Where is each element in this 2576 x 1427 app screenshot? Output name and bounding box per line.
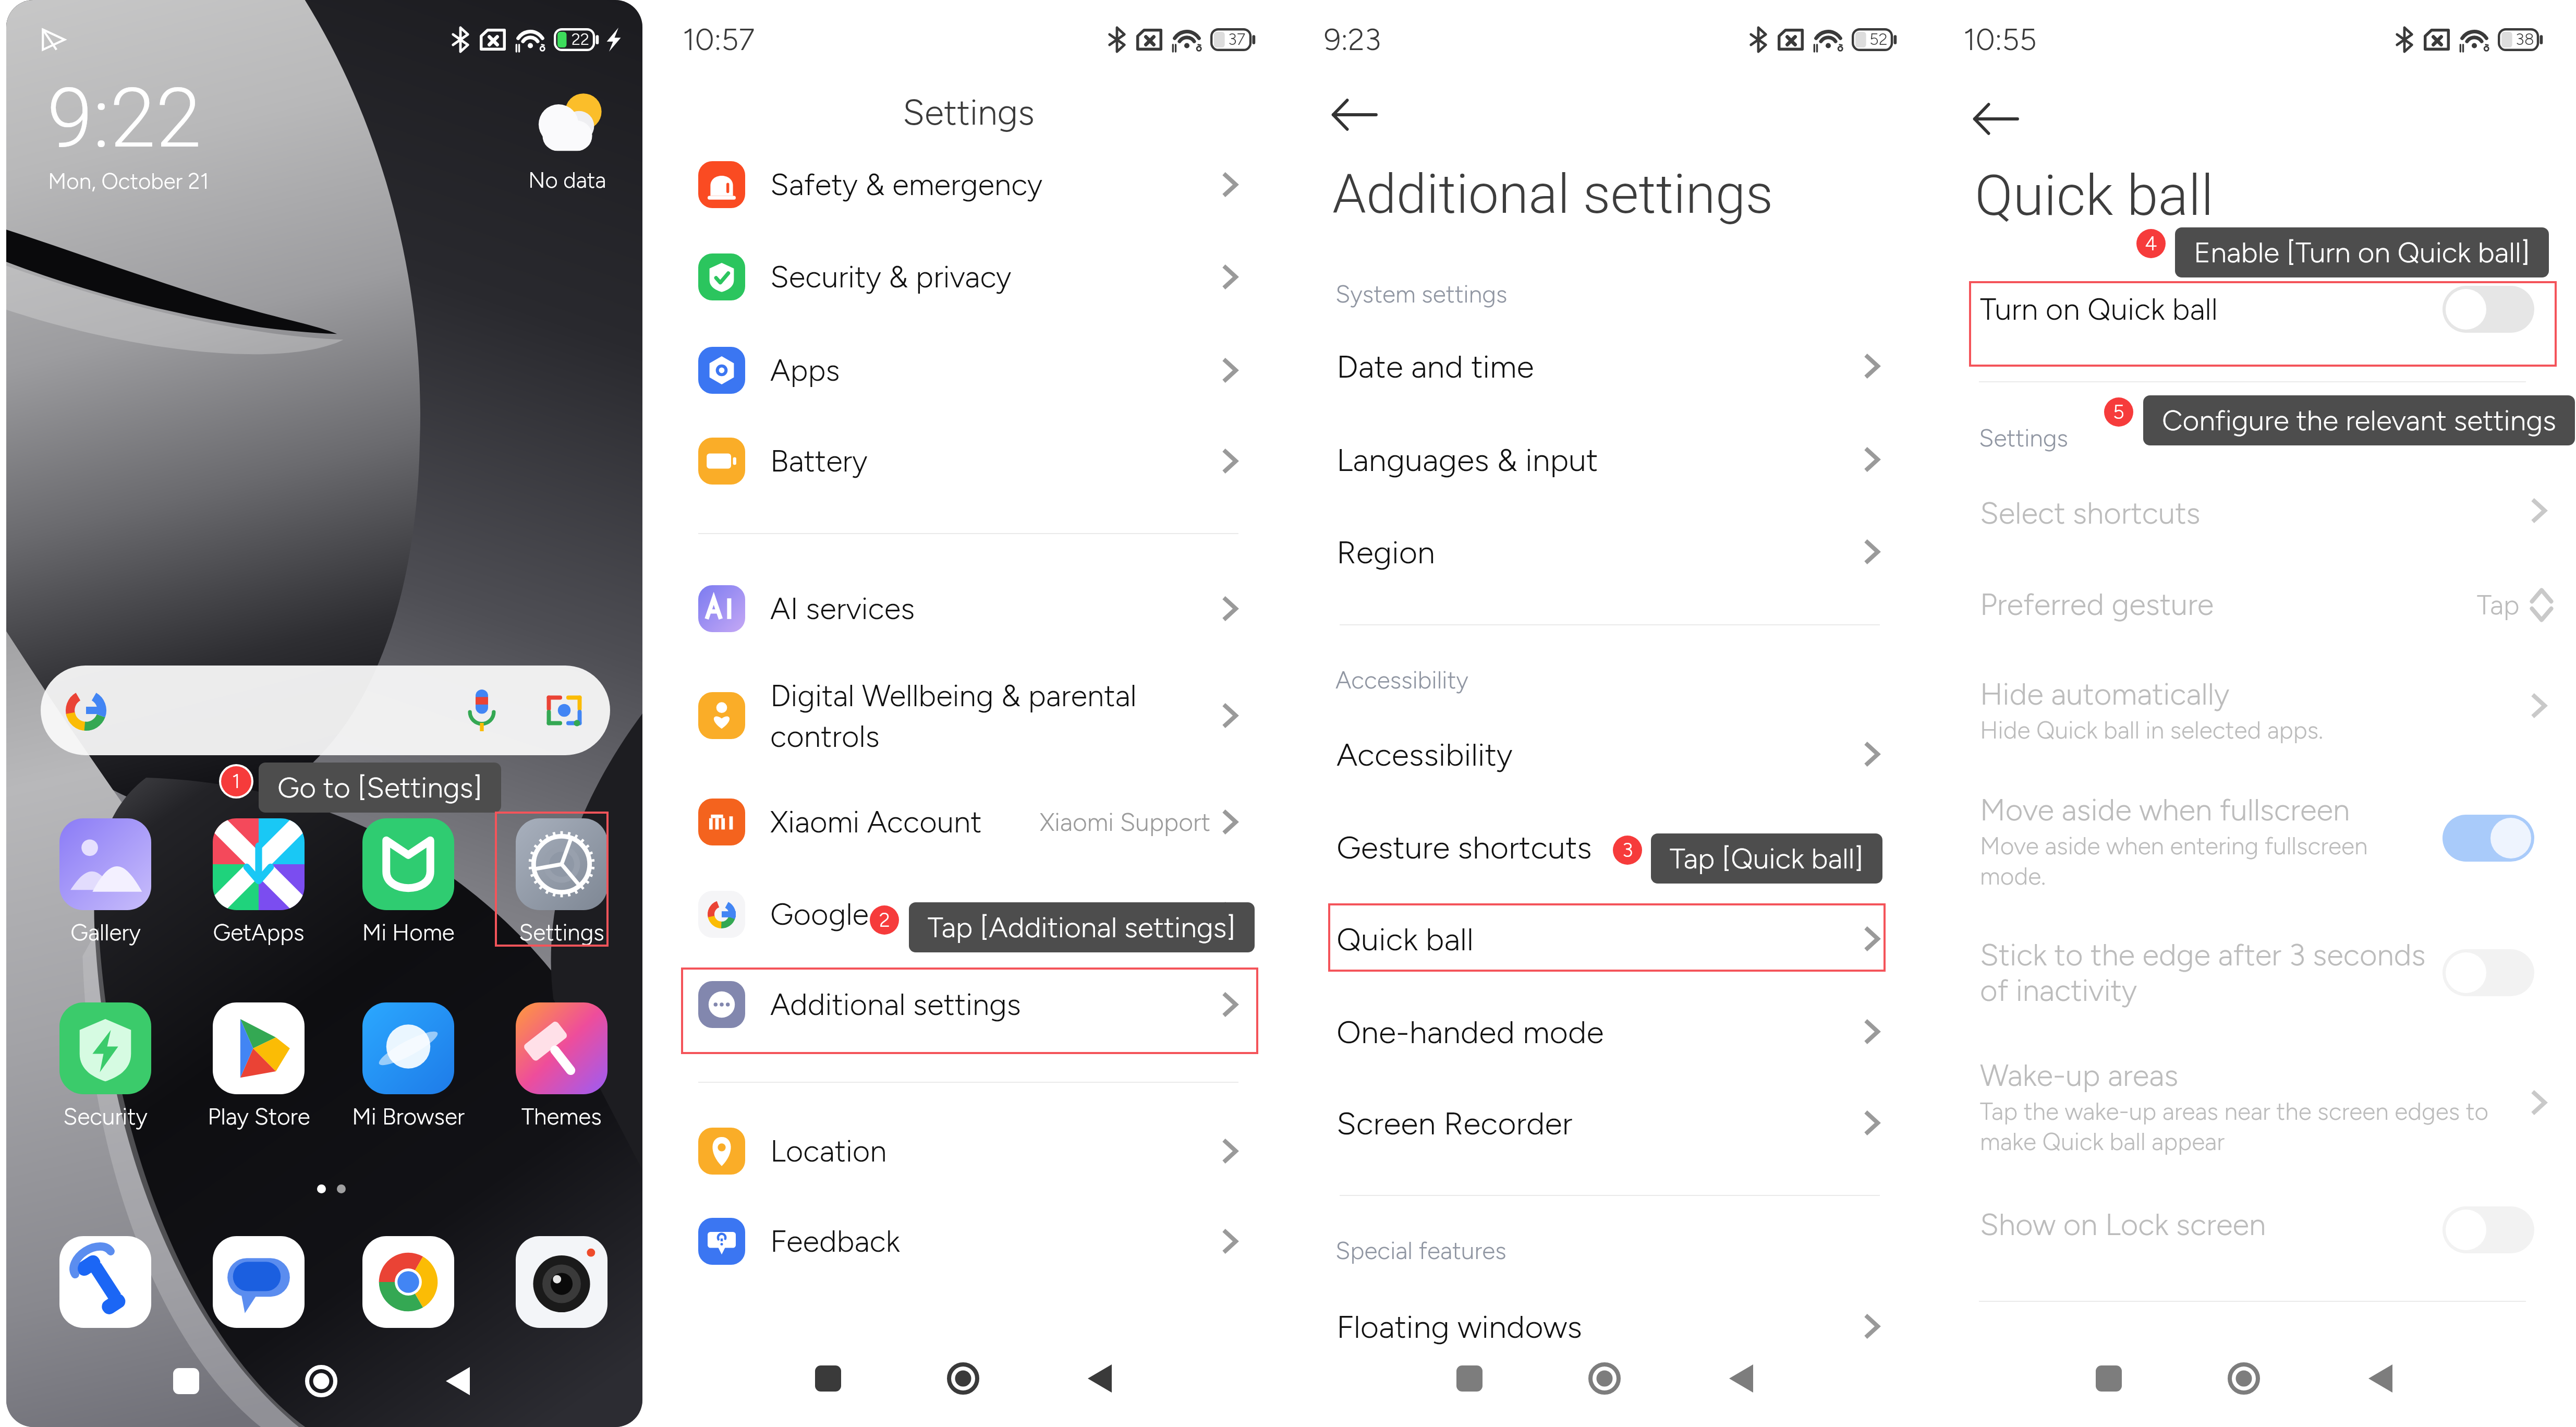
- staticText: Settings: [903, 91, 1035, 134]
- button[interactable]: App: [197, 1236, 320, 1328]
- button[interactable]: Home: [282, 1342, 360, 1420]
- button[interactable]: Feedback: [648, 1195, 1289, 1287]
- button[interactable]: Safety & emergency: [648, 139, 1289, 231]
- button[interactable]: GetApps: [197, 818, 320, 946]
- button[interactable]: Recents: [147, 1342, 225, 1420]
- button[interactable]: Region: [1290, 506, 1930, 598]
- button[interactable]: Recents: [1430, 1339, 1509, 1418]
- button[interactable]: Floating windows: [1290, 1280, 1930, 1372]
- button[interactable]: Home: [924, 1339, 1002, 1418]
- button[interactable]: Gallery: [44, 818, 167, 946]
- staticText: 10:55: [1963, 21, 2037, 58]
- button[interactable]: Show on Lock screen: [1929, 1188, 2576, 1323]
- button[interactable]: Back: [1963, 87, 2028, 151]
- button[interactable]: Hide automatically: [1929, 657, 2576, 777]
- button[interactable]: App: [44, 1236, 167, 1328]
- button[interactable]: Toggle: [2443, 1206, 2534, 1253]
- staticText: System settings: [1335, 280, 1508, 308]
- button[interactable]: App: [500, 1236, 623, 1328]
- button[interactable]: Back: [2341, 1339, 2420, 1418]
- button[interactable]: Back: [1322, 82, 1387, 147]
- button[interactable]: Back: [1702, 1339, 1780, 1418]
- button[interactable]: Mi Home: [347, 818, 470, 946]
- staticText: 10:57: [683, 21, 755, 58]
- staticText: Special features: [1335, 1236, 1506, 1265]
- staticText: Turn on Quick ball: [1980, 291, 2218, 328]
- staticText: Security: [63, 1103, 148, 1130]
- staticText: Wake-up areas: [1980, 1057, 2179, 1094]
- staticText: Xiaomi Support: [1040, 807, 1211, 837]
- staticText: Xiaomi Account: [770, 804, 982, 840]
- button[interactable]: Security: [44, 1002, 167, 1130]
- button[interactable]: Back: [1061, 1339, 1139, 1418]
- staticText: Go to [Settings]: [277, 770, 482, 805]
- button[interactable]: Google search: [41, 666, 610, 755]
- button[interactable]: One-handed mode: [1290, 986, 1930, 1078]
- button[interactable]: Languages & input: [1290, 414, 1930, 505]
- staticText: Security & privacy: [770, 259, 1012, 295]
- button[interactable]: Back: [419, 1342, 497, 1420]
- staticText: Accessibility: [1336, 735, 1513, 773]
- staticText: Google: [770, 896, 869, 933]
- button[interactable]: Battery: [648, 415, 1289, 507]
- button[interactable]: Settings: [500, 818, 623, 946]
- button[interactable]: Turn on Quick ball: [1929, 277, 2576, 371]
- button[interactable]: Google: [648, 868, 1289, 960]
- staticText: Mi Browser: [352, 1103, 465, 1130]
- button[interactable]: Play Store: [197, 1002, 320, 1130]
- button[interactable]: AI services: [648, 563, 1289, 655]
- staticText: Additional settings: [770, 986, 1021, 1023]
- staticText: Date and time: [1336, 347, 1534, 385]
- staticText: 2: [879, 908, 890, 932]
- staticText: Settings: [519, 918, 604, 946]
- staticText: Apps: [770, 352, 840, 389]
- button[interactable]: Recents: [2070, 1339, 2148, 1418]
- button[interactable]: Apps: [648, 324, 1289, 416]
- button[interactable]: Wake-up areas: [1929, 1038, 2576, 1158]
- staticText: Tap [Quick ball]: [1670, 841, 1864, 876]
- button[interactable]: Security & privacy: [648, 231, 1289, 323]
- staticText: Themes: [521, 1103, 602, 1130]
- button[interactable]: Select shortcuts: [1929, 476, 2576, 596]
- staticText: Safety & emergency: [770, 166, 1043, 203]
- button[interactable]: Accessibility: [1290, 708, 1930, 800]
- staticText: Mon, October 21: [48, 168, 209, 194]
- staticText: Preferred gesture: [1980, 586, 2214, 623]
- staticText: GetApps: [213, 918, 305, 946]
- button[interactable]: Toggle: [2443, 286, 2534, 333]
- staticText: Move aside when entering fullscreen mode…: [1980, 831, 2368, 890]
- button[interactable]: App: [347, 1236, 470, 1328]
- button[interactable]: Digital Wellbeing & parental controls: [648, 670, 1289, 761]
- staticText: Floating windows: [1336, 1308, 1583, 1346]
- button[interactable]: Home: [2205, 1339, 2283, 1418]
- button[interactable]: Recents: [789, 1339, 867, 1418]
- button[interactable]: Stick to the edge after 3 seconds of ina…: [1929, 918, 2576, 1054]
- button[interactable]: Preferred gesture: [1929, 559, 2576, 651]
- staticText: 37: [1228, 30, 1246, 49]
- staticText: 9:22: [47, 70, 202, 166]
- button[interactable]: Mi Browser: [347, 1002, 470, 1130]
- staticText: Gallery: [70, 918, 141, 946]
- staticText: Hide automatically: [1980, 676, 2230, 712]
- staticText: Enable [Turn on Quick ball]: [2194, 235, 2530, 270]
- staticText: 3: [1622, 838, 1633, 862]
- button[interactable]: Toggle: [2443, 949, 2534, 996]
- button[interactable]: Additional settings: [648, 959, 1289, 1050]
- button[interactable]: Gesture shortcuts: [1290, 801, 1930, 893]
- staticText: Screen Recorder: [1336, 1104, 1573, 1142]
- staticText: 38: [2516, 30, 2534, 49]
- staticText: Location: [770, 1133, 887, 1169]
- staticText: Settings: [1979, 424, 2069, 452]
- button[interactable]: Themes: [500, 1002, 623, 1130]
- button[interactable]: Screen Recorder: [1290, 1077, 1930, 1169]
- staticText: Feedback: [770, 1223, 900, 1260]
- button[interactable]: Toggle: [2443, 815, 2534, 862]
- staticText: Play Store: [208, 1103, 310, 1130]
- button[interactable]: Quick ball: [1290, 893, 1930, 985]
- button[interactable]: Date and time: [1290, 320, 1930, 412]
- button[interactable]: Xiaomi Account: [648, 776, 1289, 868]
- staticText: Quick ball: [1975, 163, 2214, 229]
- button[interactable]: Move aside when fullscreen: [1929, 773, 2576, 909]
- button[interactable]: Location: [648, 1105, 1289, 1197]
- button[interactable]: Home: [1565, 1339, 1644, 1418]
